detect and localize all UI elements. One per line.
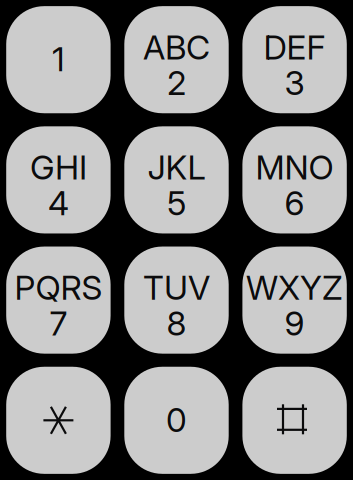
button[interactable]: DEF <box>242 6 347 113</box>
staticText: DEF <box>264 27 326 67</box>
button[interactable]: 1 <box>6 6 111 113</box>
staticText: GHI <box>30 147 87 188</box>
staticText: 5 <box>167 183 186 223</box>
staticText: TUV <box>143 267 210 308</box>
staticText: MNO <box>256 147 334 188</box>
staticText: 9 <box>285 303 305 343</box>
staticText: 6 <box>285 183 305 223</box>
staticText: 4 <box>48 183 69 223</box>
button[interactable]: WXYZ <box>242 246 347 354</box>
staticText: 7 <box>49 303 67 343</box>
button[interactable]: ABC <box>124 6 229 113</box>
staticText: ABC <box>143 27 210 67</box>
button[interactable]: PQRS <box>6 246 111 354</box>
staticText: 8 <box>166 303 186 343</box>
button[interactable]: MNO <box>242 126 347 233</box>
button[interactable]: TUV <box>124 246 229 354</box>
button[interactable]: Pound <box>242 367 347 474</box>
staticText: 1 <box>52 39 65 79</box>
button[interactable]: JKL <box>124 126 229 233</box>
staticText: 0 <box>166 400 187 440</box>
staticText: WXYZ <box>246 267 343 308</box>
button[interactable]: 0 <box>124 367 229 474</box>
staticText: 2 <box>167 63 186 103</box>
button[interactable]: GHI <box>6 126 111 233</box>
staticText: JKL <box>147 147 205 188</box>
staticText: PQRS <box>14 267 102 308</box>
button[interactable]: Star <box>6 367 111 474</box>
staticText: 3 <box>285 63 305 103</box>
